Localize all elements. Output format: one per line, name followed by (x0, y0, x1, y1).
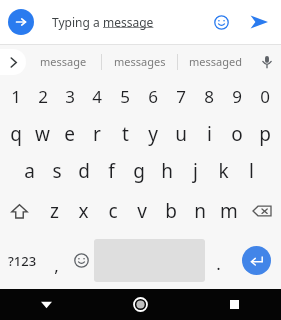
button[interactable]: Typing a (42, 7, 239, 37)
staticText: r (93, 121, 101, 147)
button[interactable]: o (223, 115, 251, 152)
button[interactable]: 7 (167, 78, 195, 115)
button[interactable]: Voice input (253, 45, 281, 78)
button[interactable]: n (185, 190, 214, 232)
staticText: 2 (38, 85, 48, 108)
staticText: Typing a (52, 14, 103, 30)
button[interactable]: d (70, 152, 97, 190)
staticText: 3 (65, 85, 75, 108)
staticText: q (10, 121, 22, 147)
button[interactable]: i (195, 115, 223, 152)
staticText: 8 (204, 85, 214, 108)
button[interactable]: message (26, 45, 101, 78)
staticText: i (207, 121, 212, 147)
staticText: a (24, 158, 35, 184)
button[interactable]: . (205, 232, 231, 289)
button[interactable]: Shift (0, 190, 39, 232)
staticText: . (216, 252, 221, 275)
button[interactable]: 4 (83, 78, 111, 115)
staticText: 9 (232, 85, 242, 108)
staticText: p (259, 121, 271, 147)
staticText: j (193, 158, 198, 184)
staticText: o (231, 121, 243, 147)
button[interactable]: y (139, 115, 167, 152)
button[interactable]: ?123 (0, 232, 45, 289)
button[interactable]: x (69, 190, 98, 232)
button[interactable]: Emoji keyboard (68, 232, 94, 289)
button[interactable]: j (181, 152, 209, 190)
staticText: t (122, 121, 129, 147)
button[interactable]: , (45, 232, 68, 289)
staticText: m (220, 198, 238, 224)
button[interactable]: Home (93, 289, 187, 320)
staticText: f (108, 158, 115, 184)
staticText: h (161, 158, 173, 184)
staticText: d (78, 158, 90, 184)
button[interactable]: u (167, 115, 195, 152)
button[interactable]: Backspace (243, 190, 281, 232)
staticText: v (137, 198, 147, 224)
staticText: b (165, 198, 177, 224)
staticText: w (35, 121, 50, 147)
staticText: k (218, 158, 229, 184)
button[interactable]: z (39, 190, 69, 232)
button[interactable]: s (43, 152, 70, 190)
staticText: u (175, 121, 187, 147)
button[interactable]: 2 (29, 78, 56, 115)
button[interactable]: 5 (111, 78, 139, 115)
button[interactable]: c (98, 190, 127, 232)
button[interactable]: m (214, 190, 243, 232)
button[interactable]: k (209, 152, 237, 190)
button[interactable]: 6 (139, 78, 167, 115)
button[interactable]: 9 (223, 78, 251, 115)
button[interactable]: Send (245, 8, 273, 36)
button[interactable]: b (156, 190, 185, 232)
button[interactable]: 0 (251, 78, 279, 115)
staticText: 1 (11, 85, 21, 108)
button[interactable]: f (97, 152, 125, 190)
staticText: g (133, 158, 145, 184)
button[interactable]: g (125, 152, 153, 190)
button[interactable]: 3 (56, 78, 83, 115)
staticText: z (50, 198, 59, 224)
button[interactable]: l (237, 152, 265, 190)
staticText: 6 (148, 85, 158, 108)
button[interactable]: Emoji (213, 14, 229, 30)
button[interactable]: r (83, 115, 111, 152)
staticText: 4 (92, 85, 102, 108)
button[interactable]: Back (0, 289, 93, 320)
button[interactable]: 8 (195, 78, 223, 115)
button[interactable]: Recent apps (187, 289, 281, 320)
staticText: ?123 (8, 252, 37, 270)
button[interactable]: t (111, 115, 139, 152)
staticText: s (52, 158, 62, 184)
button[interactable]: v (127, 190, 156, 232)
staticText: c (108, 198, 118, 224)
button[interactable]: messages (102, 45, 177, 78)
staticText: messaged (189, 54, 242, 69)
staticText: 0 (260, 85, 270, 108)
button[interactable]: e (56, 115, 83, 152)
staticText: , (54, 254, 59, 277)
staticText: x (78, 198, 89, 224)
button[interactable]: w (29, 115, 56, 152)
staticText: n (194, 198, 206, 224)
staticText: 7 (176, 85, 186, 108)
button[interactable]: p (251, 115, 279, 152)
staticText: l (249, 158, 254, 184)
button[interactable]: Expand (8, 9, 34, 35)
button[interactable]: 1 (2, 78, 29, 115)
button[interactable]: Enter (242, 246, 271, 275)
button[interactable]: More suggestions (0, 49, 26, 75)
staticText: messages (114, 54, 166, 69)
button[interactable]: h (153, 152, 181, 190)
staticText: y (148, 121, 158, 147)
staticText: message (40, 54, 87, 69)
staticText: message (103, 14, 154, 30)
staticText: e (64, 121, 75, 147)
button[interactable]: messaged (178, 45, 253, 78)
staticText: 5 (120, 85, 130, 108)
button[interactable]: a (16, 152, 43, 190)
button[interactable]: q (2, 115, 29, 152)
